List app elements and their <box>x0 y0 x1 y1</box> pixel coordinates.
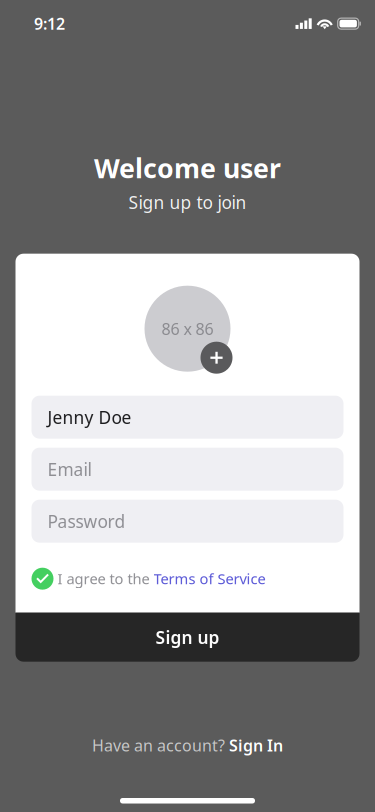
button[interactable]: Email <box>31 448 343 491</box>
staticText: Welcome user <box>94 150 281 186</box>
staticText: 86 x 86 <box>161 318 213 339</box>
staticText: 9:12 <box>34 13 65 34</box>
button[interactable]: I agree to the <box>31 568 343 590</box>
staticText: Have an account? <box>92 735 229 756</box>
button[interactable]: Sign up <box>15 613 359 662</box>
button[interactable]: Jenny Doe <box>31 396 343 439</box>
button[interactable]: Password <box>31 500 343 543</box>
staticText: Sign up <box>155 626 219 649</box>
staticText: Jenny Doe <box>47 406 131 429</box>
staticText: Password <box>47 510 125 533</box>
staticText: Email <box>47 458 91 481</box>
staticText: I agree to the <box>53 569 153 588</box>
staticText: Sign In <box>229 735 283 756</box>
button[interactable]: Have an account? <box>92 735 283 756</box>
staticText: Sign up to join <box>128 191 246 214</box>
staticText: Terms of Service <box>153 569 265 588</box>
button[interactable]: Add profile photo <box>200 342 232 374</box>
